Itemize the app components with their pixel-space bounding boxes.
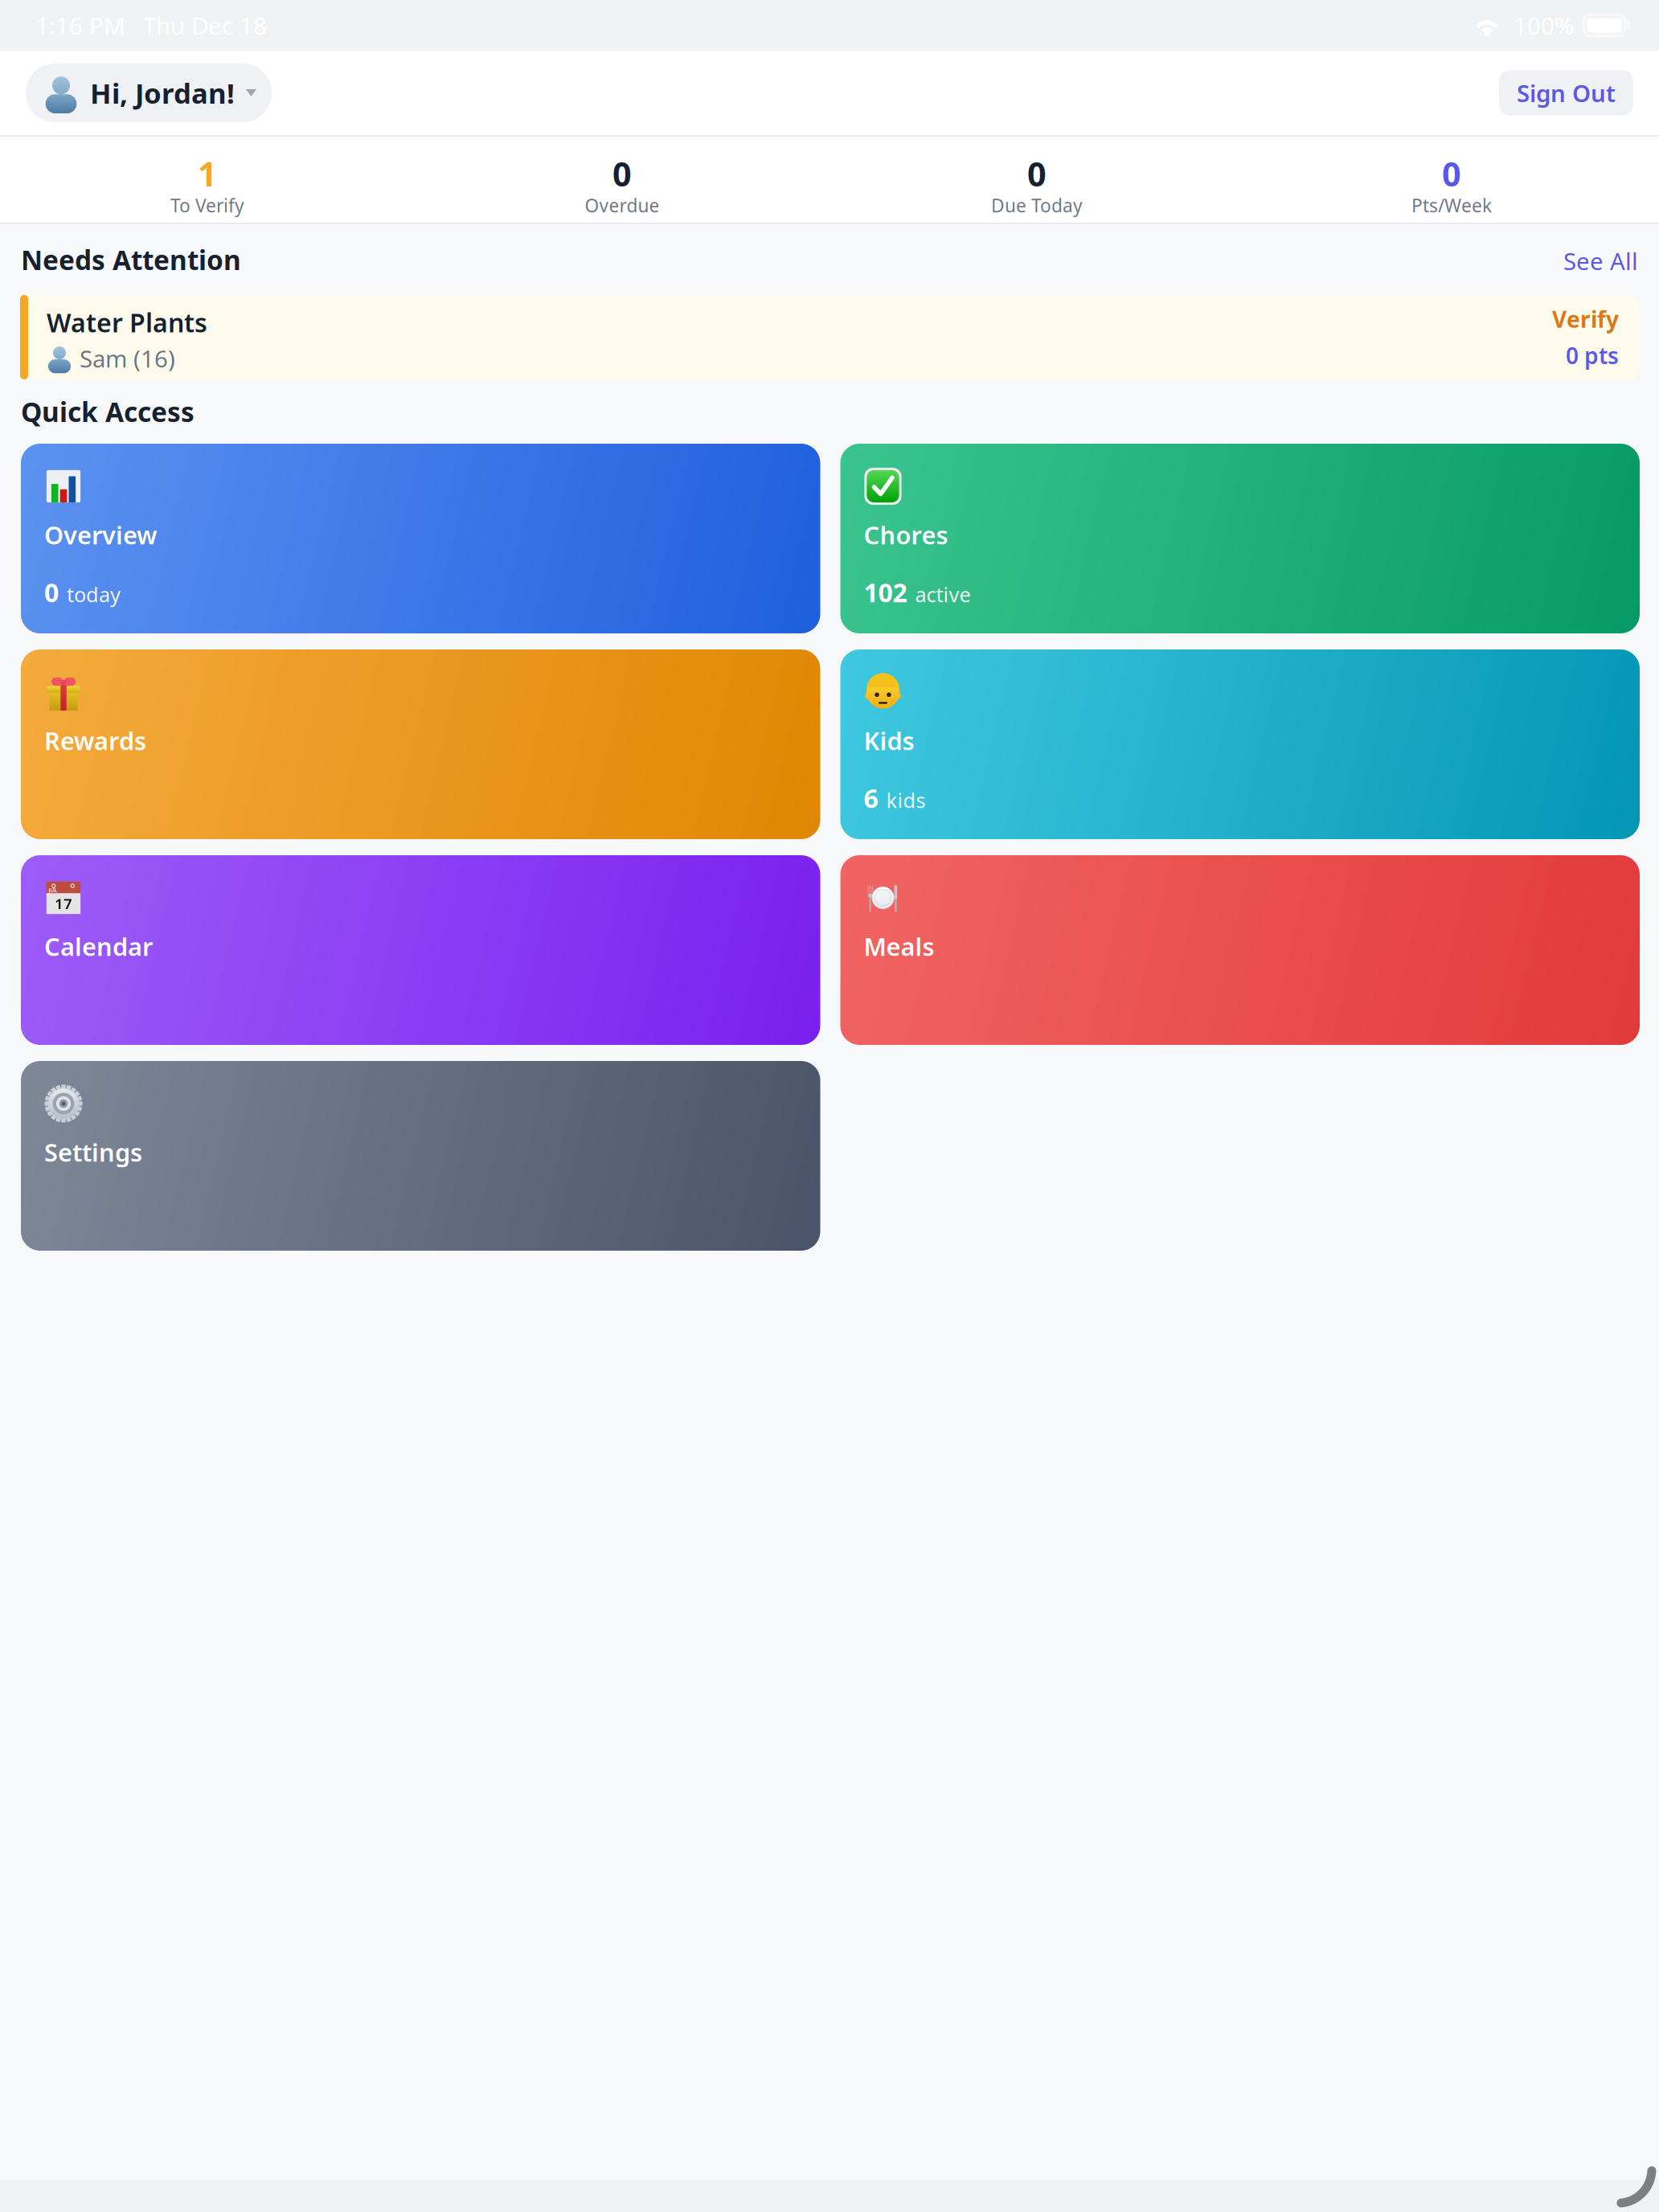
staticText: Overdue <box>585 193 660 217</box>
staticText: Rewards <box>44 724 146 757</box>
staticText: Sam (16) <box>80 343 175 374</box>
button[interactable]: JUL <box>21 855 820 1045</box>
staticText: Meals <box>864 930 934 963</box>
button[interactable]: Kids <box>840 649 1640 839</box>
staticText: 1 <box>198 152 217 196</box>
staticText: Chores <box>864 518 948 551</box>
staticText: Quick Access <box>21 394 195 429</box>
button[interactable]: Meals <box>840 855 1640 1045</box>
button[interactable]: Water Plants <box>20 295 1639 379</box>
staticText: today <box>67 581 121 608</box>
staticText: 0 pts <box>1566 340 1619 370</box>
staticText: 100% <box>1514 10 1574 41</box>
staticText: kids <box>886 786 926 814</box>
staticText: Settings <box>44 1136 142 1168</box>
staticText: Due Today <box>991 193 1083 217</box>
staticText: To Verify <box>170 193 244 217</box>
button[interactable]: Sign Out <box>1499 70 1633 115</box>
button[interactable]: Hi, Jordan! <box>26 63 272 122</box>
button[interactable]: Rewards <box>21 649 820 839</box>
staticText: 0 <box>612 152 632 196</box>
staticText: active <box>915 581 971 608</box>
staticText: 102 <box>864 575 907 609</box>
button[interactable]: Chores <box>840 444 1640 633</box>
staticText: JUL <box>48 887 57 894</box>
staticText: 1:16 PM <box>35 10 125 41</box>
staticText: 0 <box>1027 152 1047 196</box>
staticText: Water Plants <box>47 305 207 339</box>
staticText: 0 <box>1442 152 1461 196</box>
staticText: See All <box>1563 245 1638 277</box>
staticText: Needs Attention <box>21 242 241 277</box>
staticText: Hi, Jordan! <box>90 74 235 111</box>
staticText: Sign Out <box>1517 77 1616 109</box>
staticText: Calendar <box>44 930 153 963</box>
staticText: 6 <box>864 781 878 815</box>
button[interactable]: See All <box>1563 245 1638 277</box>
staticText: Pts/Week <box>1411 193 1492 217</box>
staticText: 17 <box>55 894 72 914</box>
button[interactable]: Overview <box>21 444 820 633</box>
button[interactable]: Settings <box>21 1061 820 1251</box>
staticText: Kids <box>864 724 914 757</box>
staticText: Thu Dec 18 <box>143 10 267 41</box>
staticText: Verify <box>1552 304 1619 334</box>
staticText: Overview <box>44 518 157 551</box>
staticText: 0 <box>44 575 59 609</box>
